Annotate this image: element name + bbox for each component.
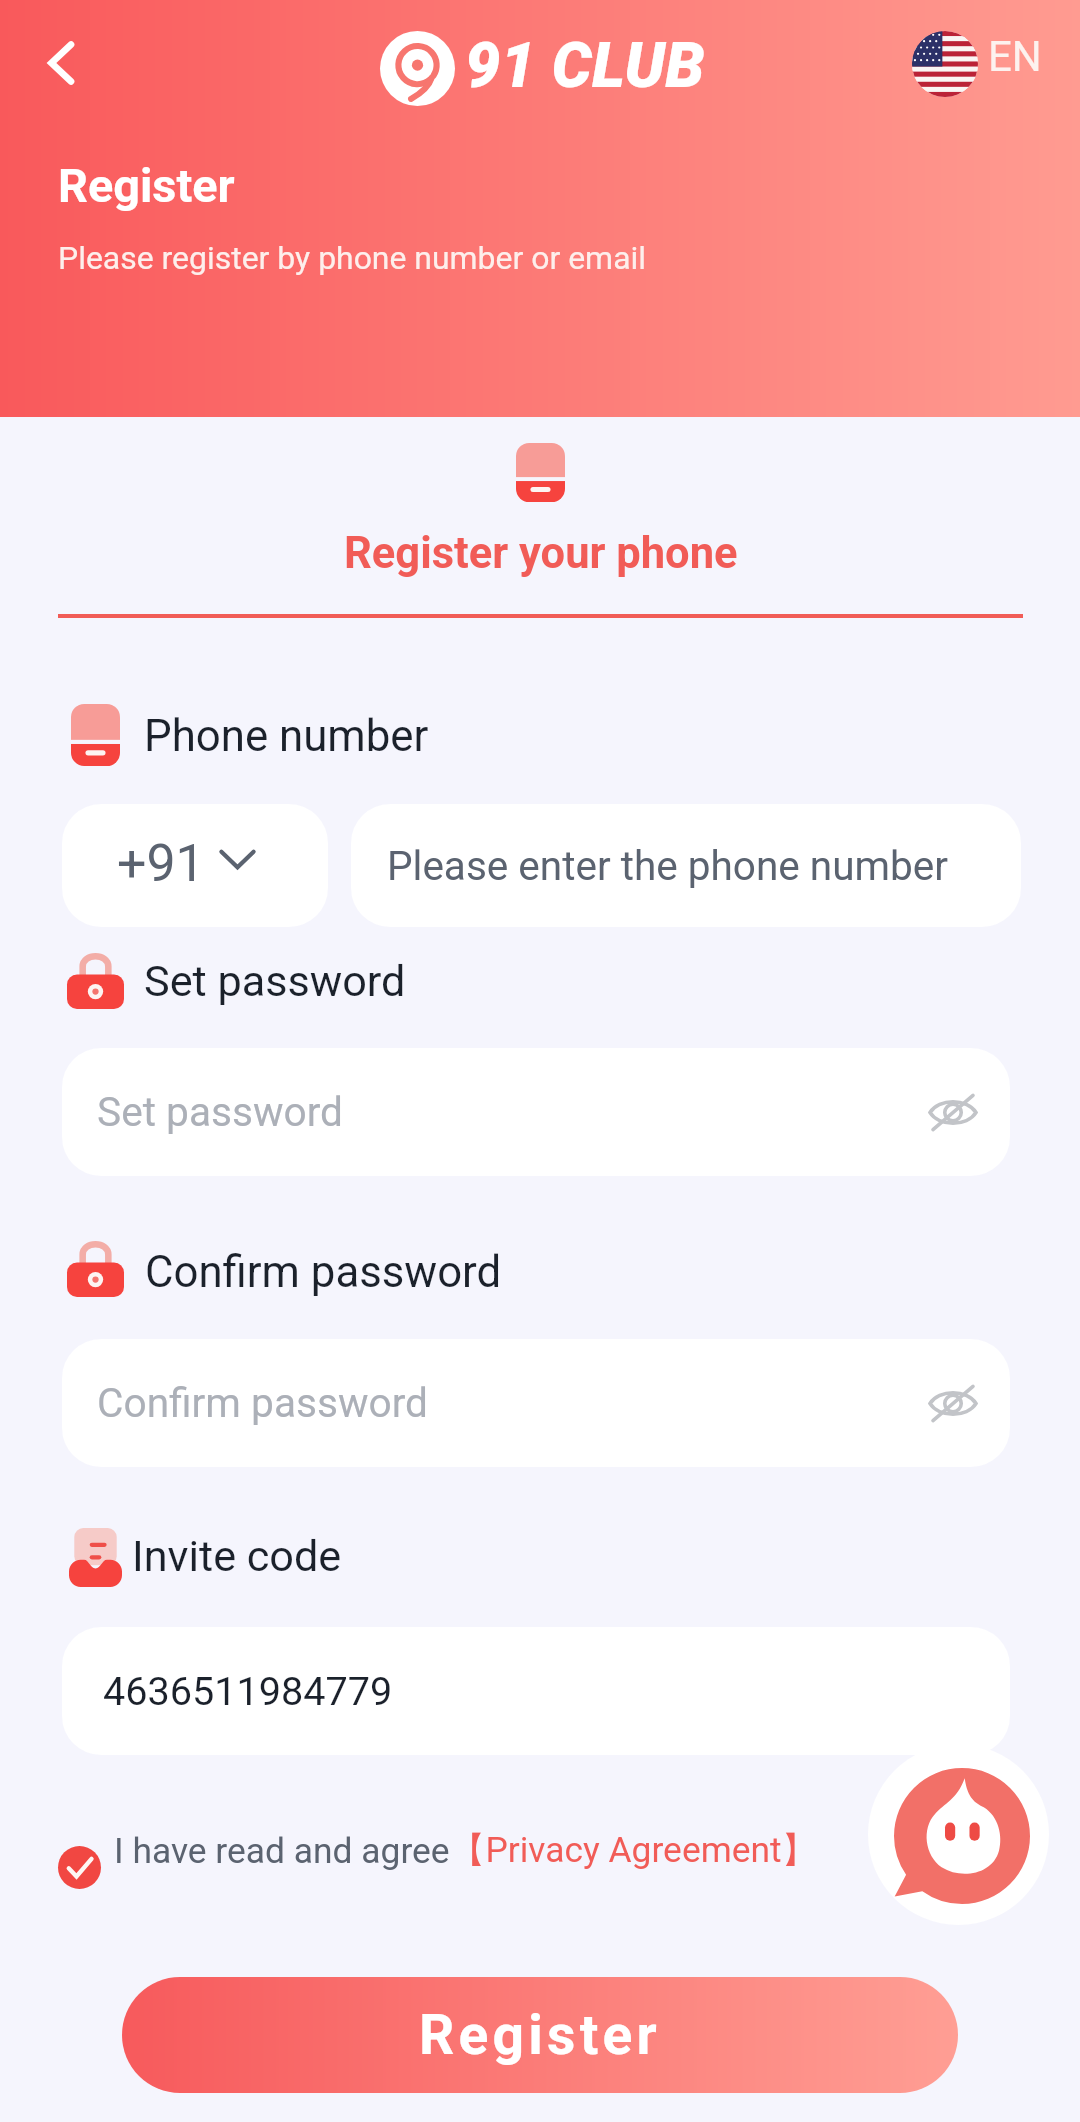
button[interactable]: Language EN	[894, 15, 1068, 123]
button[interactable]: Back	[7, 9, 115, 117]
staticText: Confirm password	[145, 1246, 502, 1297]
staticText: Set password	[144, 956, 406, 1007]
button[interactable]: Confirm password	[62, 1339, 1010, 1467]
staticText: Register	[58, 159, 235, 214]
staticText: Please enter the phone number	[387, 842, 948, 889]
staticText: +91	[117, 833, 205, 894]
button[interactable]: 4636511984779	[62, 1627, 1010, 1755]
button[interactable]: Set password	[62, 1048, 1010, 1176]
staticText: Register your phone	[344, 528, 738, 579]
staticText: Register	[419, 2003, 661, 2068]
button[interactable]: Show password	[911, 1070, 995, 1154]
staticText: I have read and agree	[114, 1830, 450, 1871]
staticText: Please register by phone number or email	[58, 239, 647, 276]
staticText: EN	[988, 32, 1042, 81]
button[interactable]: Register	[122, 1977, 958, 2093]
staticText: 91 CLUB	[465, 29, 705, 102]
button[interactable]: Please enter the phone number	[351, 804, 1021, 927]
button[interactable]: I have read and agree	[56, 1828, 817, 1873]
staticText: 【Privacy Agreement】	[450, 1828, 817, 1873]
staticText: Set password	[97, 1088, 343, 1136]
button[interactable]: Customer support	[868, 1744, 1049, 1925]
staticText: 4636511984779	[103, 1668, 393, 1714]
staticText: Phone number	[144, 710, 429, 761]
staticText: Confirm password	[97, 1379, 428, 1427]
button[interactable]: +91	[62, 804, 328, 927]
staticText: Invite code	[132, 1531, 342, 1582]
button[interactable]: Show password	[911, 1361, 995, 1445]
